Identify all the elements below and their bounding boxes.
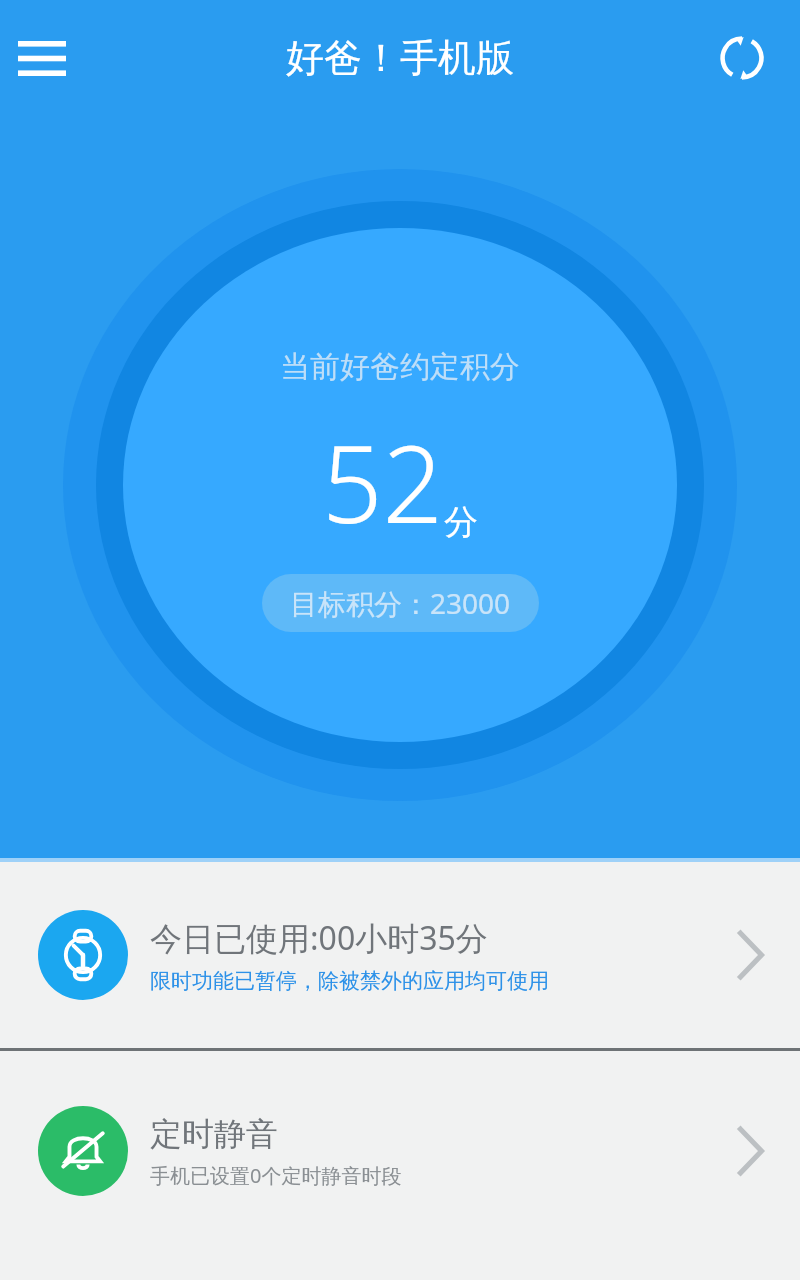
button[interactable]: Menu <box>4 20 80 96</box>
staticText: 52 <box>322 410 444 554</box>
staticText: 目标积分：23000 <box>290 584 511 622</box>
staticText: 分 <box>444 501 478 544</box>
button[interactable]: Refresh <box>704 20 780 96</box>
other: Scheduled mute <box>736 1125 766 1177</box>
staticText: 当前好爸约定积分 <box>280 348 520 386</box>
other: Usage time <box>736 929 766 981</box>
button[interactable]: 定时静音 <box>0 1051 800 1251</box>
staticText: 限时功能已暂停，除被禁外的应用均可使用 <box>150 968 549 994</box>
staticText: 今日已使用:00小时35分 <box>150 916 488 960</box>
button[interactable]: 今日已使用:00小时35分 <box>0 862 800 1048</box>
staticText: 定时静音 <box>150 1114 278 1154</box>
staticText: 好爸！手机版 <box>286 34 514 82</box>
staticText: 手机已设置0个定时静音时段 <box>150 1162 402 1189</box>
